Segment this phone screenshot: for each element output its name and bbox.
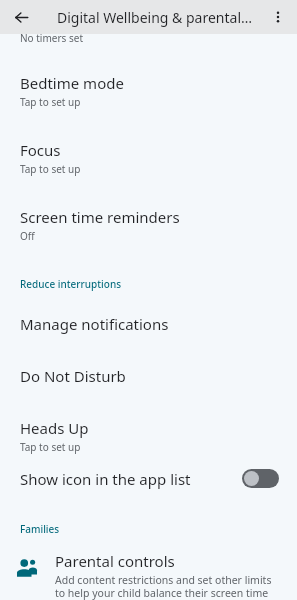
- button[interactable]: Focus: [0, 109, 297, 176]
- staticText: Digital Wellbeing & parental…: [57, 8, 253, 27]
- staticText: Screen time reminders: [20, 207, 180, 227]
- button[interactable]: No timers set: [0, 34, 297, 47]
- button[interactable]: Show icon in the app list: [0, 454, 297, 503]
- staticText: Parental controls: [55, 551, 175, 571]
- staticText: Tap to set up: [20, 440, 81, 454]
- button[interactable]: Back: [8, 4, 34, 30]
- staticText: Add content restrictions and set other l…: [55, 573, 283, 600]
- staticText: Manage notifications: [20, 314, 169, 334]
- staticText: Reduce interruptions: [20, 277, 122, 291]
- button[interactable]: Manage notifications: [0, 291, 297, 334]
- staticText: Tap to set up: [20, 95, 81, 109]
- staticText: Do Not Disturb: [20, 366, 126, 386]
- staticText: Tap to set up: [20, 162, 81, 176]
- staticText: Off: [20, 229, 35, 243]
- staticText: No timers set: [20, 31, 83, 44]
- staticText: Bedtime mode: [20, 73, 124, 93]
- staticText: Focus: [20, 140, 61, 160]
- staticText: Heads Up: [20, 418, 89, 438]
- button[interactable]: Do Not Disturb: [0, 334, 297, 386]
- staticText: Show icon in the app list: [20, 469, 242, 489]
- staticText: Families: [20, 522, 60, 536]
- button[interactable]: Bedtime mode: [0, 47, 297, 109]
- button[interactable]: Heads Up: [0, 386, 297, 454]
- button[interactable]: Screen time reminders: [0, 176, 297, 243]
- button[interactable]: Parental controls: [0, 536, 297, 600]
- button[interactable]: More options: [265, 4, 291, 30]
